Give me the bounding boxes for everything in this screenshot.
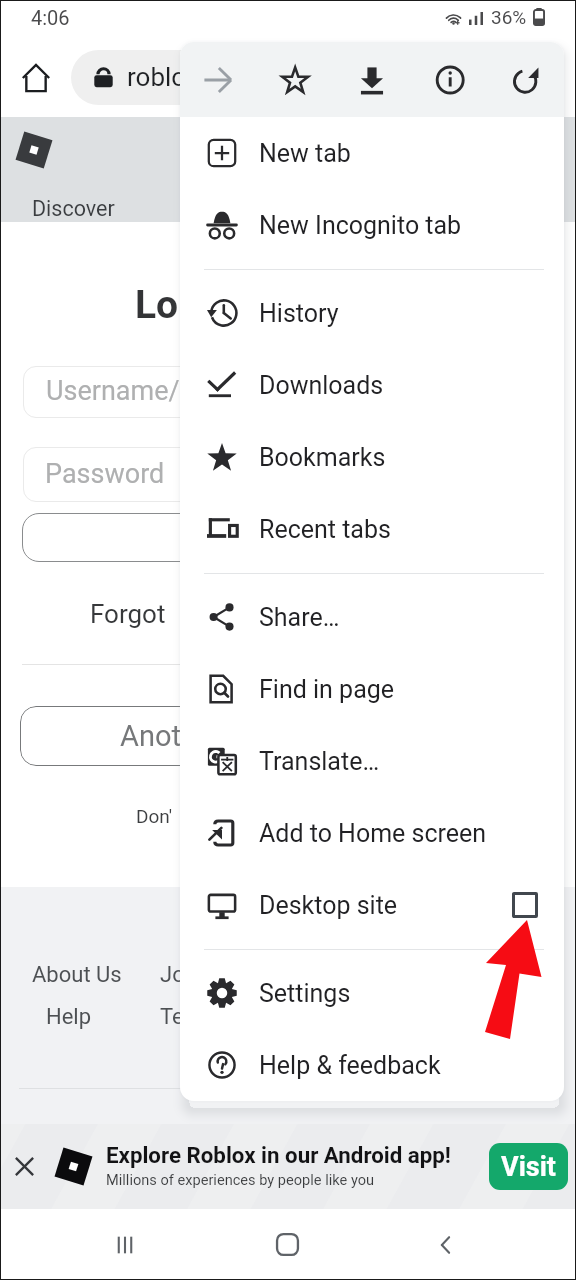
button[interactable]: Settings bbox=[180, 957, 564, 1029]
staticText: Te bbox=[160, 1004, 184, 1030]
button[interactable]: New tab bbox=[180, 117, 564, 189]
staticText: Lo bbox=[135, 282, 179, 328]
staticText: About Us bbox=[32, 962, 122, 988]
staticText: Settings bbox=[259, 979, 351, 1008]
button[interactable]: Desktop site bbox=[180, 869, 564, 941]
button[interactable]: History bbox=[180, 277, 564, 349]
staticText: Desktop site bbox=[259, 891, 398, 920]
staticText: Forgot bbox=[90, 599, 166, 629]
staticText: roblox.com bbox=[127, 62, 257, 92]
staticText: Password bbox=[45, 458, 165, 490]
staticText: Discover bbox=[32, 196, 115, 221]
button[interactable]: Home bbox=[253, 1219, 321, 1270]
staticText: Find in page bbox=[259, 675, 395, 704]
staticText: Explore Roblox in our Android app! bbox=[106, 1142, 451, 1168]
button[interactable]: Visit bbox=[489, 1143, 568, 1190]
staticText: Millions of experiences by people like y… bbox=[106, 1171, 375, 1188]
staticText: Jo bbox=[160, 962, 185, 988]
staticText: Help & feedback bbox=[259, 1051, 441, 1080]
staticText: New tab bbox=[259, 139, 351, 168]
staticText: History bbox=[259, 299, 339, 328]
button[interactable]: Share… bbox=[180, 581, 564, 653]
staticText: 4:06 bbox=[31, 6, 70, 29]
staticText: Downloads bbox=[259, 371, 384, 400]
staticText: Add to Home screen bbox=[259, 819, 487, 848]
button[interactable]: Add to Home screen bbox=[180, 797, 564, 869]
button[interactable]: Page info bbox=[410, 42, 487, 117]
staticText: Help bbox=[46, 1004, 92, 1030]
staticText: Anot bbox=[120, 719, 181, 753]
staticText: New Incognito tab bbox=[259, 211, 462, 240]
staticText: Username/ bbox=[46, 375, 180, 407]
staticText: Recent tabs bbox=[259, 515, 391, 544]
button[interactable]: Help & feedback bbox=[180, 1029, 564, 1101]
staticText: Don' bbox=[136, 805, 173, 827]
button[interactable]: Reload bbox=[487, 42, 564, 117]
button[interactable]: New Incognito tab bbox=[180, 189, 564, 261]
staticText: Visit bbox=[501, 1151, 556, 1183]
button[interactable]: Bookmarks bbox=[180, 421, 564, 493]
button[interactable]: Recent apps bbox=[91, 1219, 159, 1270]
staticText: Translate… bbox=[259, 747, 380, 776]
staticText: Share… bbox=[259, 603, 340, 632]
button[interactable]: Forward bbox=[180, 42, 256, 117]
button[interactable]: Find in page bbox=[180, 653, 564, 725]
button[interactable]: Back bbox=[412, 1219, 480, 1270]
button[interactable]: Recent tabs bbox=[180, 493, 564, 565]
staticText: 36% bbox=[491, 6, 527, 28]
button[interactable]: Home bbox=[22, 64, 50, 92]
button[interactable]: Download page bbox=[333, 42, 410, 117]
button[interactable]: Translate… bbox=[180, 725, 564, 797]
button[interactable]: Downloads bbox=[180, 349, 564, 421]
button[interactable]: Bookmark this page bbox=[256, 42, 333, 117]
button[interactable]: Close banner bbox=[11, 1153, 38, 1180]
staticText: Bookmarks bbox=[259, 443, 386, 472]
